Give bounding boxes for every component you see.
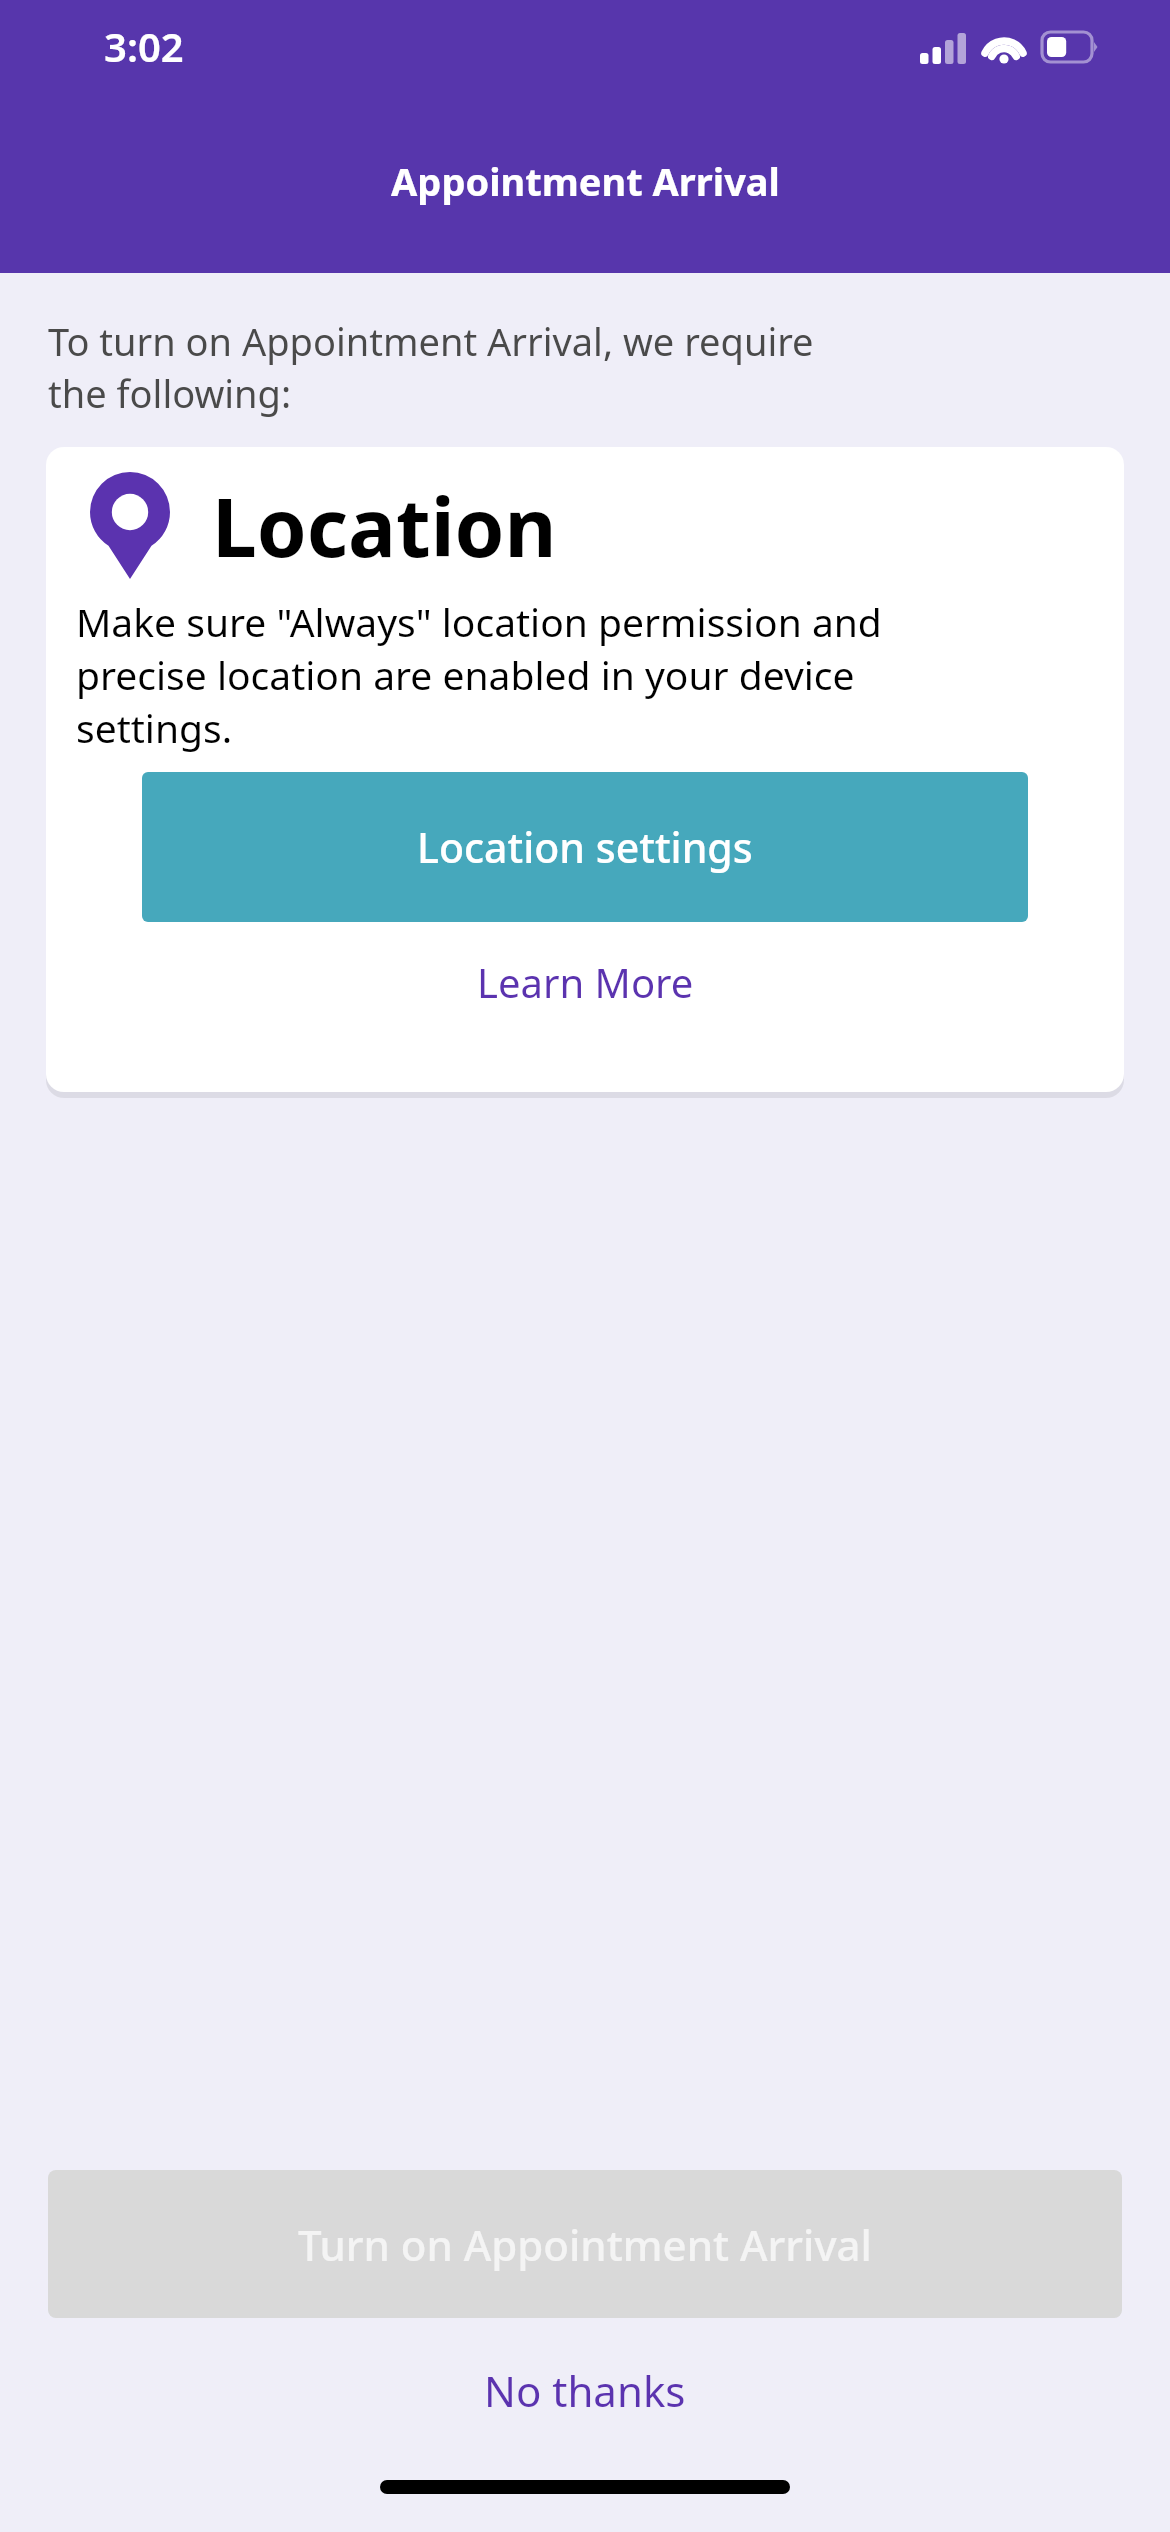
staticText: To turn on Appointment Arrival, we requi… [48,315,814,367]
staticText: 3:02 [104,19,184,73]
other: Location [90,469,170,581]
staticText: settings. [76,701,233,754]
staticText: Learn More [477,955,694,1009]
staticText: Turn on Appointment Arrival [298,2216,872,2273]
staticText: Location settings [417,819,753,875]
button[interactable]: No thanks [0,2318,1170,2462]
staticText: No thanks [484,2362,686,2419]
button[interactable]: Turn on Appointment Arrival [48,2170,1122,2318]
button[interactable]: Learn More [46,922,1124,1042]
staticText: Make sure "Always" location permission a… [76,595,882,648]
staticText: Location [212,471,557,580]
staticText: Appointment Arrival [391,155,780,207]
staticText: precise location are enabled in your dev… [76,648,855,701]
staticText: the following: [48,367,292,419]
button[interactable]: Location settings [142,772,1028,922]
